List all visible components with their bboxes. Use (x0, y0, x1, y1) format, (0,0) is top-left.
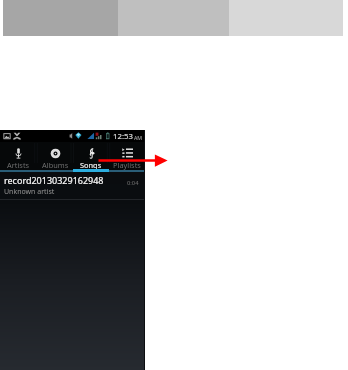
staticText: 12:53 (113, 131, 133, 142)
staticText: record20130329162948 (4, 174, 104, 186)
button[interactable]: record20130329162948 (0, 172, 145, 200)
staticText: Playlists (113, 160, 141, 170)
button[interactable]: Songs (73, 142, 109, 172)
staticText: Albums (42, 160, 69, 170)
button[interactable]: Playlists (109, 142, 145, 172)
staticText: Artists (7, 160, 30, 170)
button[interactable]: Albums (37, 142, 73, 172)
staticText: AM (134, 134, 143, 141)
staticText: Unknown artist (4, 187, 55, 197)
staticText: 0:04 (127, 179, 139, 187)
button[interactable]: Artists (0, 142, 37, 172)
staticText: Songs (80, 160, 102, 170)
